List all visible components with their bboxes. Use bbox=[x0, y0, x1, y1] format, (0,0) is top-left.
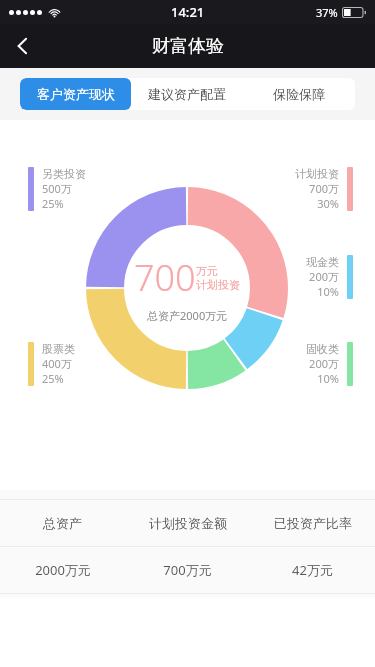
staticText: 另类投资 bbox=[42, 167, 86, 181]
staticText: 200万 bbox=[309, 356, 339, 371]
staticText: 700 bbox=[134, 253, 196, 302]
staticText: 10% bbox=[317, 371, 339, 386]
button[interactable]: 保险保障 bbox=[243, 78, 355, 110]
staticText: 已投资产比率 bbox=[274, 515, 352, 531]
staticText: 400万 bbox=[42, 356, 72, 371]
staticText: 30% bbox=[317, 196, 339, 211]
staticText: 保险保障 bbox=[273, 86, 325, 102]
staticText: 股票类 bbox=[42, 342, 75, 356]
staticText: 计划投资金额 bbox=[149, 515, 227, 531]
staticText: 25% bbox=[42, 371, 64, 386]
staticText: 万元 bbox=[196, 264, 218, 278]
button[interactable]: 建议资产配置 bbox=[131, 78, 243, 110]
staticText: 固收类 bbox=[306, 342, 339, 356]
staticText: 总资产2000万元 bbox=[147, 308, 228, 323]
staticText: 计划投资 bbox=[196, 278, 240, 292]
staticText: 现金类 bbox=[306, 255, 339, 269]
staticText: 财富体验 bbox=[152, 35, 224, 58]
staticText: 客户资产现状 bbox=[37, 86, 115, 102]
staticText: 建议资产配置 bbox=[148, 86, 226, 102]
staticText: 25% bbox=[42, 196, 64, 211]
staticText: 700万元 bbox=[163, 561, 212, 579]
staticText: 10% bbox=[317, 284, 339, 299]
staticText: 14:21 bbox=[171, 3, 205, 21]
staticText: 700万 bbox=[309, 181, 339, 196]
button[interactable]: Back bbox=[0, 24, 46, 68]
staticText: 总资产 bbox=[43, 515, 82, 531]
staticText: 37% bbox=[316, 5, 338, 20]
button[interactable]: 客户资产现状 bbox=[20, 78, 131, 110]
staticText: 42万元 bbox=[292, 561, 333, 579]
staticText: 计划投资 bbox=[295, 167, 339, 181]
staticText: 200万 bbox=[309, 269, 339, 284]
staticText: 2000万元 bbox=[35, 561, 91, 579]
staticText: 500万 bbox=[42, 181, 72, 196]
